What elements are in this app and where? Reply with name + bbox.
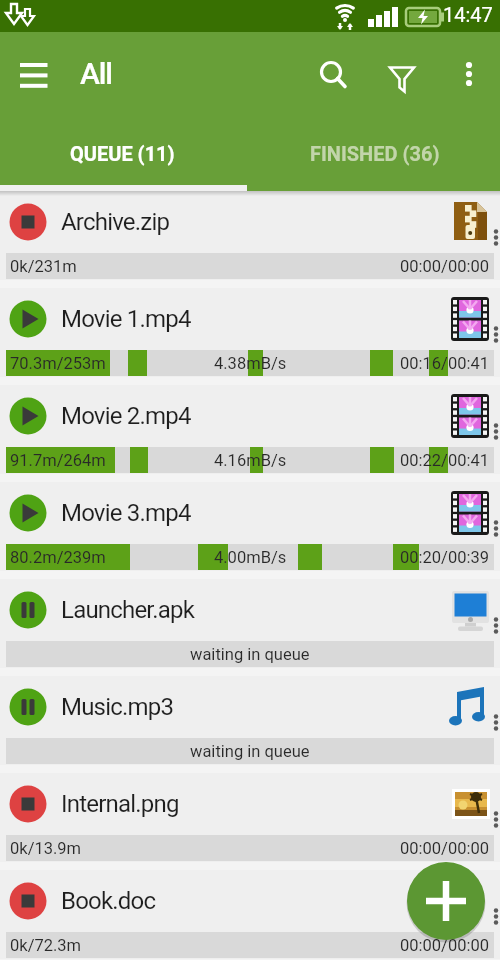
staticText: Archive.zip xyxy=(61,208,170,236)
button[interactable] xyxy=(378,52,422,96)
staticText: 0k/231m xyxy=(10,257,77,276)
button[interactable] xyxy=(446,52,490,96)
staticText: 00:22/00:41 xyxy=(400,451,489,470)
staticText: 0k/72.3m xyxy=(10,936,82,955)
staticText: 00:20/00:39 xyxy=(400,548,489,567)
staticText: 0k/13.9m xyxy=(10,839,82,858)
staticText: 14:47 xyxy=(443,3,493,26)
staticText: Music.mp3 xyxy=(61,693,174,721)
staticText: 00:00/00:00 xyxy=(400,936,489,955)
staticText: 70.3m/253m xyxy=(10,354,106,373)
staticText: waiting in queue xyxy=(190,742,310,761)
staticText: 91.7m/264m xyxy=(10,451,106,470)
staticText: Book.doc xyxy=(61,887,156,915)
button[interactable]: Archive.zip xyxy=(0,191,500,288)
staticText: Movie 2.mp4 xyxy=(61,402,191,430)
staticText: Internal.png xyxy=(61,790,179,818)
button[interactable]: Movie 2.mp4 xyxy=(0,385,500,482)
button[interactable] xyxy=(10,63,58,89)
button[interactable]: FINISHED (36) xyxy=(250,115,500,191)
staticText: 80.2m/239m xyxy=(10,548,106,567)
button[interactable]: QUEUE (11) xyxy=(0,115,250,191)
staticText: 00:16/00:41 xyxy=(400,354,489,373)
staticText: 4.00mB/s xyxy=(214,548,287,567)
staticText: 4.16mB/s xyxy=(214,451,287,470)
staticText: Movie 3.mp4 xyxy=(61,499,191,527)
staticText: Movie 1.mp4 xyxy=(61,305,191,333)
staticText: FINISHED (36) xyxy=(310,142,440,165)
button[interactable]: Movie 1.mp4 xyxy=(0,288,500,385)
staticText: All xyxy=(80,56,112,91)
button[interactable]: Music.mp3 xyxy=(0,676,500,773)
staticText: 00:00/00:00 xyxy=(400,257,489,276)
button[interactable] xyxy=(407,862,485,940)
button[interactable]: Movie 3.mp4 xyxy=(0,482,500,579)
staticText: 4.38mB/s xyxy=(214,354,287,373)
button[interactable] xyxy=(310,52,354,96)
button[interactable]: Launcher.apk xyxy=(0,579,500,676)
staticText: 00:00/00:00 xyxy=(400,839,489,858)
button[interactable]: Internal.png xyxy=(0,773,500,870)
button[interactable]: Book.doc xyxy=(0,870,500,960)
staticText: waiting in queue xyxy=(190,645,310,664)
staticText: Launcher.apk xyxy=(61,596,195,624)
staticText: QUEUE (11) xyxy=(70,142,175,165)
